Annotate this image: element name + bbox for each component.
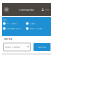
staticText: Send RFQ xyxy=(37,46,46,48)
button[interactable]: All Items xyxy=(3,21,26,26)
staticText: Awarded Only xyxy=(7,27,21,30)
staticText: Short Listed xyxy=(30,27,42,30)
staticText: Send RFQ xyxy=(3,37,12,40)
staticText: Select a Vendor xyxy=(5,46,20,48)
button[interactable]: Save xyxy=(42,3,51,16)
button[interactable]: Menu xyxy=(2,3,11,16)
staticText: Open xyxy=(30,22,35,25)
staticText: All Items xyxy=(7,22,17,25)
staticText: Filter xyxy=(3,18,7,21)
staticText: Save xyxy=(45,8,49,11)
button[interactable]: Send RFQ xyxy=(33,43,50,51)
staticText: Download RFQ xyxy=(19,8,34,11)
button[interactable]: Select a Vendor xyxy=(3,43,30,51)
button[interactable]: Awarded Only xyxy=(3,26,26,31)
button[interactable]: Short Listed xyxy=(26,26,49,31)
button[interactable]: Open xyxy=(26,21,49,26)
